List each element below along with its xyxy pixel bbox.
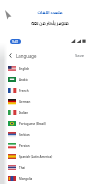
- button[interactable]: English: [0, 63, 92, 74]
- button[interactable]: Save: [75, 53, 85, 59]
- staticText: Spanish (Latin America): [19, 155, 53, 159]
- staticText: متوفر بأكثر من لغة: [4, 19, 92, 27]
- button[interactable]: German: [0, 96, 92, 107]
- button[interactable]: French: [0, 85, 92, 96]
- staticText: Serbian: [19, 133, 30, 137]
- staticText: Arabic: [19, 78, 28, 82]
- staticText: English: [19, 67, 30, 71]
- button[interactable]: Portuguese (Brazil): [0, 118, 92, 129]
- staticText: French: [19, 89, 29, 93]
- button[interactable]: Back: [7, 52, 14, 59]
- staticText: Persian: [19, 144, 30, 148]
- button[interactable]: Persian: [0, 140, 92, 151]
- staticText: 9:41: [12, 40, 19, 44]
- staticText: Language: [16, 53, 37, 59]
- button[interactable]: Serbian: [0, 129, 92, 140]
- button[interactable]: Mongolia: [0, 173, 92, 184]
- staticText: Mongolia: [19, 177, 33, 181]
- staticText: Portuguese (Brazil): [19, 122, 46, 126]
- staticText: German: [19, 100, 31, 104]
- button[interactable]: Arabic: [0, 74, 92, 85]
- button[interactable]: Italian: [0, 107, 92, 118]
- staticText: Thai: [19, 166, 25, 170]
- button[interactable]: Spanish (Latin America): [0, 151, 92, 162]
- staticText: Save: [75, 53, 85, 59]
- staticText: متعدد اللغات: [4, 8, 92, 16]
- staticText: Italian: [19, 111, 29, 115]
- button[interactable]: Thai: [0, 162, 92, 173]
